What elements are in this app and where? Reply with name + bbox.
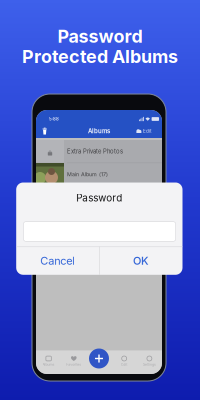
button[interactable]: Delete <box>39 125 50 136</box>
staticText: Extra Private Photos <box>67 148 123 155</box>
staticText: Protected Albums <box>22 46 178 67</box>
button[interactable]: Edit <box>112 353 137 369</box>
staticText: Albums <box>88 127 110 135</box>
staticText: Albums <box>43 362 55 366</box>
staticText: OK <box>133 254 149 267</box>
staticText: Main Album (17) <box>67 171 108 177</box>
staticText: Edit <box>143 128 152 134</box>
staticText: Favorites <box>66 362 81 366</box>
button[interactable]: Settings <box>137 353 162 369</box>
button[interactable]: Add <box>89 348 109 368</box>
staticText: Password <box>76 192 122 204</box>
button[interactable]: Cancel <box>16 246 99 275</box>
staticText: Password <box>57 25 142 47</box>
button[interactable]: Favorites <box>61 353 86 369</box>
staticText: 5:88 <box>49 116 59 122</box>
staticText: Settings <box>143 362 156 366</box>
button[interactable]: OK <box>99 246 182 275</box>
button[interactable]: Albums <box>36 353 61 369</box>
staticText: Cancel <box>40 254 75 267</box>
button[interactable]: Edit <box>136 125 152 136</box>
staticText: Edit <box>121 362 127 366</box>
